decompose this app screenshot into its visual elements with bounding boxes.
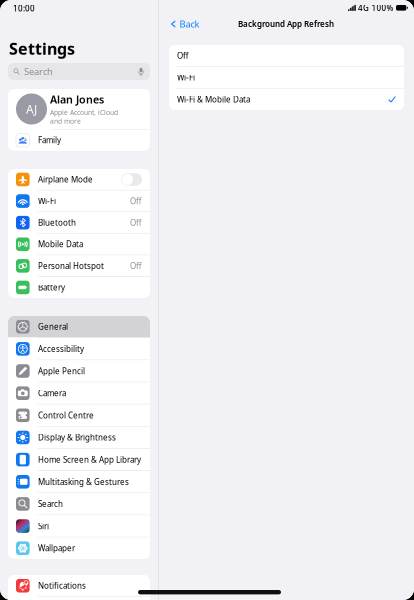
staticText: Off — [177, 50, 189, 61]
staticText: Display & Brightness — [38, 432, 116, 443]
staticText: Battery — [38, 282, 65, 293]
button[interactable]: Search — [8, 493, 150, 515]
staticText: Wi-Fi — [38, 196, 56, 206]
button[interactable]: Display & Brightness — [8, 427, 150, 448]
staticText: Search — [24, 65, 53, 78]
staticText: 10:00 — [13, 3, 35, 14]
staticText: Multitasking & Gestures — [38, 476, 129, 487]
button[interactable]: Home Screen & App Library — [8, 449, 150, 470]
staticText: Wallpaper — [38, 543, 75, 553]
staticText: General — [38, 321, 68, 332]
button[interactable]: Off — [169, 45, 404, 66]
button[interactable]: Wi-Fi — [8, 191, 150, 211]
staticText: Background App Refresh — [238, 19, 334, 29]
staticText: AJ — [26, 101, 37, 117]
staticText: Bluetooth — [38, 217, 76, 228]
staticText: Accessibility — [38, 344, 84, 354]
button[interactable]: Multitasking & Gestures — [8, 471, 150, 492]
button[interactable]: Personal Hotspot — [8, 255, 150, 276]
staticText: Search — [38, 499, 63, 509]
staticText: Apple Account, iCloud — [50, 108, 118, 117]
staticText: Wi-Fi & Mobile Data — [177, 94, 250, 105]
button[interactable]: Back — [166, 14, 205, 34]
button[interactable]: Control Centre — [8, 405, 150, 426]
staticText: 4G — [358, 2, 369, 13]
button[interactable]: Wi-Fi & Mobile Data — [169, 89, 404, 110]
button[interactable]: Airplane Mode — [8, 169, 150, 190]
staticText: 100% — [371, 2, 393, 13]
staticText: Apple Pencil — [38, 366, 85, 376]
button[interactable]: Battery — [8, 277, 150, 298]
button[interactable]: Camera — [8, 382, 150, 404]
staticText: Mobile Data — [38, 239, 83, 249]
button[interactable]: Mobile Data — [8, 234, 150, 255]
staticText: Home Screen & App Library — [38, 454, 141, 465]
button[interactable]: Siri — [8, 515, 150, 537]
button[interactable]: Wallpaper — [8, 537, 150, 559]
staticText: Off — [130, 260, 142, 271]
button[interactable]: Accessibility — [8, 338, 150, 359]
staticText: Notifications — [38, 580, 86, 591]
button[interactable]: Bluetooth — [8, 212, 150, 233]
button[interactable]: General — [8, 316, 150, 337]
staticText: Airplane Mode — [38, 174, 93, 185]
staticText: Control Centre — [38, 410, 94, 421]
staticText: Family — [38, 135, 61, 145]
button[interactable]: Wi-Fi — [169, 67, 404, 88]
button[interactable]: Search — [8, 63, 150, 80]
button[interactable]: AJ — [8, 89, 150, 129]
button[interactable]: Notifications — [8, 575, 150, 596]
button[interactable]: Apple Pencil — [8, 360, 150, 382]
button[interactable]: Family — [8, 130, 150, 151]
staticText: Wi-Fi — [177, 72, 195, 83]
staticText: Off — [130, 217, 142, 228]
staticText: Off — [130, 196, 142, 206]
staticText: Settings — [9, 38, 75, 59]
staticText: Personal Hotspot — [38, 260, 104, 271]
staticText: Alan Jones — [50, 92, 104, 106]
staticText: Camera — [38, 388, 66, 398]
staticText: and more — [50, 117, 81, 126]
staticText: Siri — [38, 521, 49, 531]
staticText: Back — [179, 18, 199, 30]
